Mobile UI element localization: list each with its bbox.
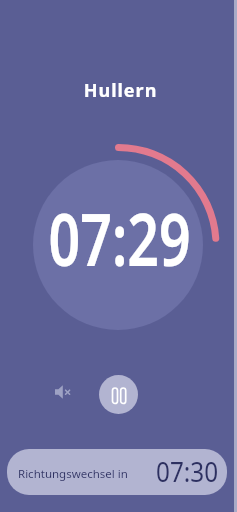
staticText: 07:29 xyxy=(49,188,191,278)
staticText: Richtungswechsel in xyxy=(18,466,128,482)
staticText: 07:30 xyxy=(156,453,219,490)
staticText: Hullern xyxy=(2,78,237,103)
button[interactable] xyxy=(99,375,138,414)
button[interactable] xyxy=(49,378,77,406)
button[interactable]: Richtungswechsel in xyxy=(7,449,227,495)
